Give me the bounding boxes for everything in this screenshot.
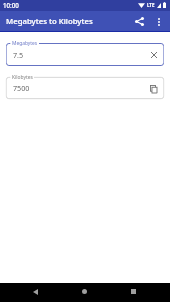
button[interactable]: Clear	[147, 48, 160, 61]
staticText: Megabytes	[12, 40, 38, 47]
button[interactable]: Recent apps	[124, 282, 143, 301]
button[interactable]: 7.5	[6, 43, 164, 66]
button[interactable]: 7500	[6, 77, 164, 99]
staticText: 7500	[13, 83, 30, 93]
button[interactable]: More options	[149, 12, 168, 31]
staticText: Kilobytes	[12, 74, 33, 81]
button[interactable]: Home	[75, 282, 94, 301]
staticText: 7.5	[13, 50, 24, 60]
staticText: 10:00	[3, 1, 19, 9]
button[interactable]: Back	[26, 282, 45, 301]
staticText: Megabytes to Kilobytes	[6, 16, 93, 27]
staticText: LTE	[147, 2, 155, 8]
button[interactable]: Copy	[147, 82, 160, 95]
button[interactable]: Share	[130, 12, 149, 31]
